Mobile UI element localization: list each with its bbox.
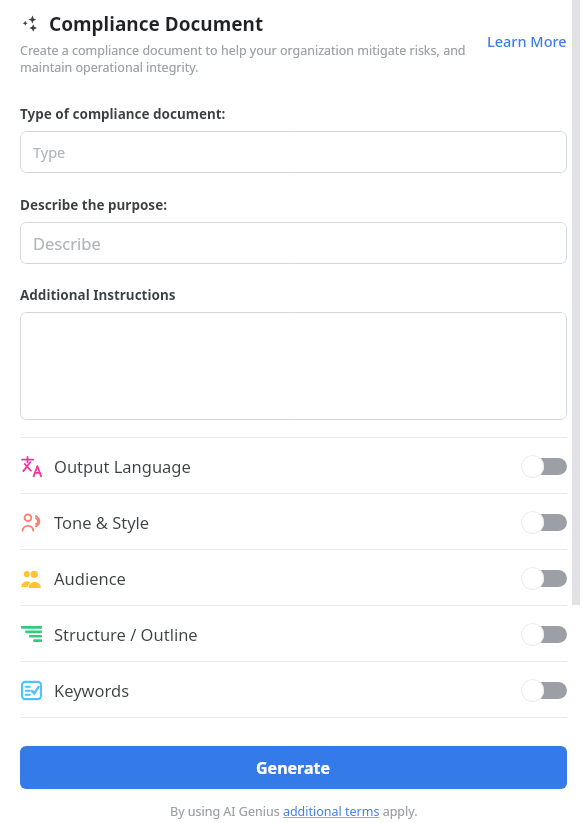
staticText: Type [33,142,66,162]
button[interactable]: Toggle option [521,565,567,591]
staticText: By using AI Genius additional terms appl… [170,803,418,820]
staticText: Keywords [54,679,130,701]
staticText: Describe [33,232,101,254]
button[interactable]: Toggle option [521,621,567,647]
button[interactable]: Structure / Outline [0,606,587,661]
button[interactable] [20,312,567,420]
button[interactable]: Keywords [0,662,587,717]
button[interactable]: Describe [20,222,567,264]
button[interactable]: Audience [0,550,587,605]
button[interactable]: Type [20,131,567,173]
button[interactable]: By using AI Genius additional terms appl… [170,803,418,820]
button[interactable]: Toggle option [521,677,567,703]
button[interactable]: Toggle option [521,453,567,479]
button[interactable]: Output Language [0,438,587,493]
staticText: Learn More [487,31,567,51]
staticText: Create a compliance document to help you… [20,42,477,76]
button[interactable]: Tone & Style [0,494,587,549]
staticText: Type of compliance document: [20,105,226,123]
button[interactable]: Toggle option [521,509,567,535]
staticText: Describe the purpose: [20,196,168,214]
staticText: Output Language [54,455,191,477]
staticText: Generate [256,757,331,779]
staticText: Additional Instructions [20,286,176,304]
staticText: Structure / Outline [54,623,198,645]
button[interactable]: Learn More [487,31,567,51]
staticText: Compliance Document [49,11,264,37]
staticText: Audience [54,567,126,589]
staticText: Tone & Style [54,511,150,533]
button[interactable]: Generate [20,746,567,789]
